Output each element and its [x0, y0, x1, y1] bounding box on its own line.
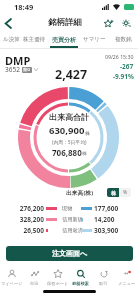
staticText: 株: [85, 130, 90, 136]
button[interactable]: %: [119, 188, 131, 197]
staticText: 売買分析: [52, 36, 76, 44]
staticText: %: [123, 189, 128, 196]
staticText: 現物: [62, 205, 73, 212]
staticText: 18:49: [14, 2, 34, 12]
staticText: 株主優待: [23, 36, 45, 43]
staticText: 信用新規: [62, 216, 83, 223]
staticText: 630,900: [49, 124, 85, 137]
staticText: 276,200: [0, 204, 44, 213]
button[interactable]: マイページ: [0, 266, 23, 286]
staticText: サマリー: [83, 36, 106, 43]
button[interactable]: 複数銘: [110, 32, 136, 47]
staticText: 177,600: [94, 204, 119, 213]
staticText: マイページ: [1, 281, 23, 286]
button[interactable]: Back: [0, 14, 16, 32]
button[interactable]: Settings: [119, 16, 133, 30]
staticText: 303,900: [94, 226, 119, 235]
staticText: 328,200: [0, 215, 44, 224]
staticText: (内周：5日平均): [52, 139, 87, 146]
staticText: 2,427: [55, 66, 88, 83]
staticText: 市況: [30, 281, 39, 286]
staticText: 注文画面へ: [52, 249, 88, 258]
button[interactable]: 取引: [92, 266, 115, 286]
button[interactable]: 市況: [23, 266, 46, 286]
staticText: 取引: [99, 281, 108, 286]
staticText: 東G: [23, 67, 31, 73]
staticText: 銘柄検索: [72, 281, 89, 286]
staticText: ル決算: [3, 36, 20, 43]
button[interactable]: 保有ボード: [46, 266, 69, 286]
staticText: -9.91%: [113, 72, 134, 80]
staticText: 株: [82, 151, 87, 157]
staticText: 706,880: [52, 147, 82, 158]
staticText: 3652: [5, 65, 20, 74]
button[interactable]: 株主優待: [23, 32, 45, 47]
button[interactable]: 注文画面へ: [6, 246, 133, 261]
button[interactable]: Add to watchlist: [101, 16, 115, 30]
button[interactable]: 売買分析: [50, 32, 78, 47]
staticText: 信用返済: [62, 227, 83, 234]
staticText: 銘柄詳細: [48, 17, 82, 28]
staticText: 出来高合計: [49, 112, 89, 122]
staticText: 14,200: [94, 215, 115, 224]
button[interactable]: サマリー: [82, 32, 106, 47]
staticText: DMP: [5, 53, 31, 68]
button[interactable]: ル決算: [0, 32, 22, 47]
staticText: 複数銘: [115, 36, 132, 43]
staticText: 保有ボード: [47, 281, 69, 286]
button[interactable]: 銘柄検索: [69, 266, 92, 286]
staticText: 26,500: [0, 226, 44, 235]
staticText: -267: [120, 62, 134, 71]
staticText: 出来高(株): [66, 189, 94, 197]
staticText: 株: [111, 190, 116, 196]
staticText: メニュー: [118, 281, 136, 286]
button[interactable]: メニュー: [115, 266, 138, 286]
staticText: 09/26 15:30: [105, 53, 134, 60]
button[interactable]: 株: [107, 188, 119, 197]
